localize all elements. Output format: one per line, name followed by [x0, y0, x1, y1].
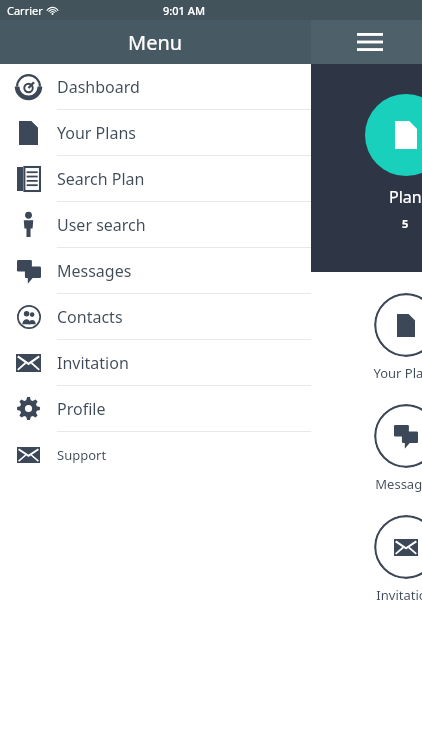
- button[interactable]: Open menu: [311, 20, 422, 64]
- button[interactable]: Search Plan: [0, 156, 311, 202]
- staticText: Dashboard: [57, 76, 140, 98]
- button[interactable]: Your Plans: [350, 293, 422, 382]
- button[interactable]: Support: [0, 432, 311, 477]
- staticText: Contacts: [57, 306, 123, 328]
- staticText: Menu: [128, 29, 183, 56]
- staticText: 9:01 AM: [163, 3, 206, 18]
- button[interactable]: Messages: [0, 248, 311, 294]
- button[interactable]: [365, 94, 422, 176]
- staticText: Support: [57, 446, 107, 464]
- staticText: Messages: [375, 475, 422, 493]
- staticText: Invitation: [57, 352, 129, 374]
- staticText: Invitation: [376, 586, 422, 604]
- button[interactable]: Dashboard: [0, 64, 311, 110]
- button[interactable]: Profile: [0, 386, 311, 432]
- staticText: Profile: [57, 398, 106, 420]
- staticText: Your Plans: [373, 364, 422, 382]
- button[interactable]: User search: [0, 202, 311, 248]
- staticText: Search Plan: [57, 168, 145, 190]
- button[interactable]: Messages: [350, 404, 422, 493]
- button[interactable]: Invitation: [0, 340, 311, 386]
- button[interactable]: Your Plans: [0, 110, 311, 156]
- button[interactable]: Contacts: [0, 294, 311, 340]
- staticText: Carrier: [7, 3, 43, 18]
- staticText: Messages: [57, 260, 132, 282]
- staticText: Plan: [389, 186, 422, 208]
- staticText: 5: [402, 216, 409, 231]
- button[interactable]: Invitation: [350, 515, 422, 604]
- staticText: Your Plans: [57, 122, 136, 144]
- staticText: User search: [57, 214, 146, 236]
